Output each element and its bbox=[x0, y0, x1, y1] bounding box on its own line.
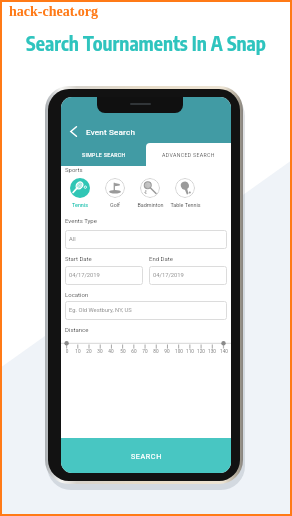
button[interactable]: Eg. Old Westbury, NY, US bbox=[65, 301, 227, 320]
staticText: 50 bbox=[117, 349, 129, 355]
staticText: 10 bbox=[72, 349, 84, 355]
staticText: 0 bbox=[61, 349, 73, 355]
staticText: 130 bbox=[206, 349, 218, 355]
staticText: 80 bbox=[150, 349, 162, 355]
staticText: SIMPLE SEARCH bbox=[82, 152, 126, 158]
button[interactable]: Golf bbox=[95, 178, 135, 208]
staticText: 140 bbox=[218, 349, 230, 355]
button[interactable]: ADVANCED SEARCH bbox=[146, 143, 231, 166]
staticText: Event Search bbox=[86, 127, 136, 136]
staticText: 20 bbox=[83, 349, 95, 355]
staticText: 40 bbox=[105, 349, 117, 355]
staticText: 04/17/2019 bbox=[69, 272, 100, 279]
staticText: Events Type bbox=[65, 217, 97, 224]
button[interactable]: Back bbox=[66, 124, 80, 138]
staticText: Search Tournaments In A Snap bbox=[0, 31, 292, 55]
staticText: Sports bbox=[65, 166, 83, 173]
staticText: ADVANCED SEARCH bbox=[162, 152, 215, 158]
staticText: 100 bbox=[173, 349, 185, 355]
staticText: Table Tennis bbox=[170, 202, 201, 208]
button[interactable]: SEARCH bbox=[61, 438, 231, 473]
staticText: Eg. Old Westbury, NY, US bbox=[69, 307, 132, 314]
button[interactable]: All bbox=[65, 230, 227, 249]
staticText: 04/17/2019 bbox=[153, 272, 184, 279]
staticText: 110 bbox=[184, 349, 196, 355]
staticText: 30 bbox=[94, 349, 106, 355]
staticText: Badminton bbox=[137, 202, 164, 208]
staticText: 90 bbox=[161, 349, 173, 355]
staticText: Distance bbox=[65, 326, 89, 333]
staticText: End Date bbox=[149, 255, 173, 262]
button[interactable]: Tennis bbox=[61, 178, 100, 208]
staticText: SEARCH bbox=[131, 452, 162, 460]
staticText: hack-cheat.org bbox=[9, 4, 99, 20]
staticText: All bbox=[69, 236, 76, 243]
staticText: Start Date bbox=[65, 255, 92, 262]
staticText: Tennis bbox=[72, 202, 88, 208]
staticText: 120 bbox=[195, 349, 207, 355]
staticText: 60 bbox=[128, 349, 140, 355]
button[interactable]: 04/17/2019 bbox=[149, 266, 227, 285]
button[interactable]: SIMPLE SEARCH bbox=[61, 143, 146, 166]
staticText: Golf bbox=[110, 202, 120, 208]
button[interactable]: Badminton bbox=[130, 178, 170, 208]
staticText: Location bbox=[65, 291, 89, 298]
staticText: 70 bbox=[139, 349, 151, 355]
button[interactable]: Table Tennis bbox=[165, 178, 205, 208]
button[interactable]: 04/17/2019 bbox=[65, 266, 143, 285]
